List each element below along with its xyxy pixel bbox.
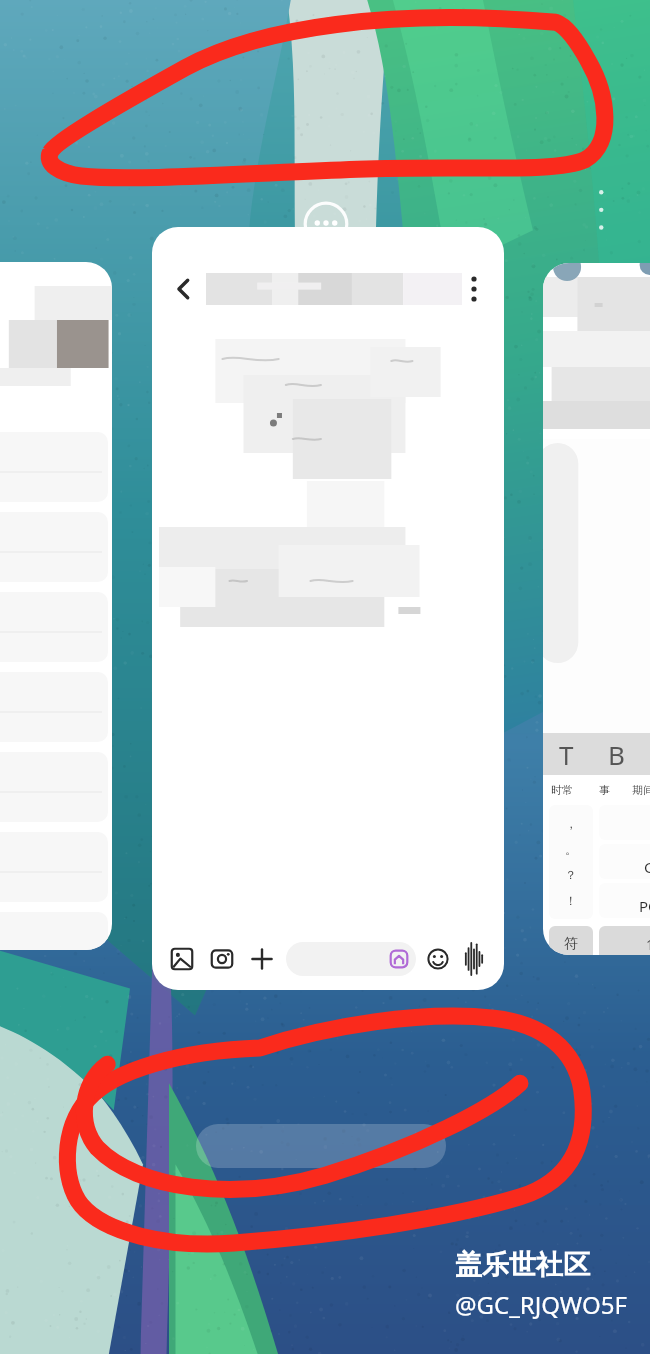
button[interactable]: Sticker [386, 946, 412, 972]
staticText: 。 [565, 842, 577, 857]
staticText: 期间 [632, 783, 650, 797]
button[interactable]: ， [549, 805, 593, 919]
staticText: 符 [564, 935, 578, 953]
button[interactable]: Emoji [422, 943, 454, 975]
button[interactable]: Navigation handle [196, 1124, 446, 1168]
button[interactable]: 123 [599, 926, 650, 955]
button[interactable]: Message input [286, 942, 416, 976]
button[interactable]: More options [452, 267, 496, 311]
button[interactable]: 符 [549, 926, 593, 955]
button[interactable]: Recent app: list [0, 262, 112, 950]
button[interactable]: Gallery [166, 943, 198, 975]
button[interactable]: Recent app: chat [152, 227, 504, 990]
staticText: 123 [646, 935, 650, 954]
button[interactable]: Back [160, 267, 204, 311]
staticText: @GC_RJQWO5F [455, 1288, 627, 1321]
staticText: GHI [644, 857, 650, 877]
staticText: PQRS [639, 896, 650, 916]
staticText: B [608, 737, 625, 772]
staticText: 时常 [551, 783, 573, 797]
button[interactable]: Voice message [458, 943, 490, 975]
staticText: ？ [565, 867, 577, 882]
button[interactable]: Camera [206, 943, 238, 975]
button[interactable]: 7 [599, 883, 650, 918]
staticText: T [559, 737, 574, 772]
staticText: 事 [599, 783, 610, 797]
staticText: 盖乐世社区 [455, 1248, 590, 1282]
staticText: ， [565, 816, 577, 831]
other: Messages app icon [300, 200, 352, 252]
staticText: ！ [565, 893, 577, 908]
button[interactable]: Recent app: editor with keyboard [543, 263, 650, 955]
button[interactable]: Add attachment [246, 943, 278, 975]
button[interactable]: 4 [599, 844, 650, 879]
